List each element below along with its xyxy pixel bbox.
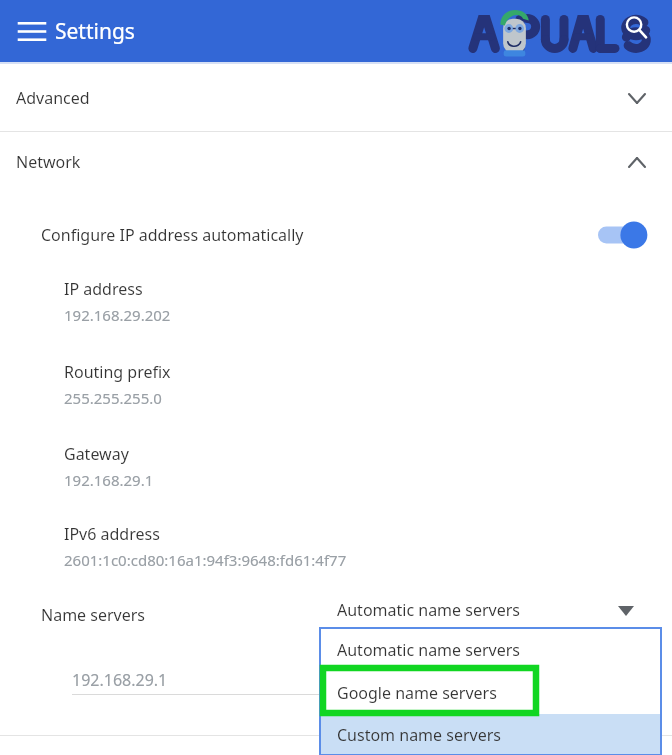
staticText: Automatic name servers [337,599,520,621]
staticText: IPv6 address [64,523,160,545]
staticText: Configure IP address automatically [41,224,304,246]
button[interactable]: Open navigation menu [10,9,54,53]
staticText: 192.168.29.1 [64,470,154,490]
staticText: IP address [64,278,143,300]
staticText: Custom name servers [337,724,501,746]
button[interactable]: Configure IP address automatically [0,207,672,263]
staticText: Automatic name servers [337,639,520,661]
staticText: Advanced [16,87,90,109]
button[interactable]: Search [614,5,658,49]
staticText: Settings [55,17,135,46]
staticText: 255.255.255.0 [64,388,162,408]
staticText: 192.168.29.1 [72,669,168,691]
staticText: 2601:1c0:cd80:16a1:94f3:9648:fd61:4f77 [64,550,347,570]
button[interactable]: Automatic name servers [320,628,661,671]
staticText: 192.168.29.202 [64,305,171,325]
button[interactable]: Network [0,132,672,192]
button[interactable]: Automatic name servers [330,592,640,628]
staticText: Routing prefix [64,361,171,383]
staticText: Network [16,151,81,173]
other: Configure IP address automatically toggl… [598,220,648,250]
button[interactable]: Advanced [0,64,672,132]
button[interactable]: Custom name servers [320,714,661,755]
button[interactable]: Google name servers [320,671,661,714]
staticText: Google name servers [337,682,497,704]
staticText: Name servers [41,604,146,626]
staticText: Gateway [64,443,129,465]
